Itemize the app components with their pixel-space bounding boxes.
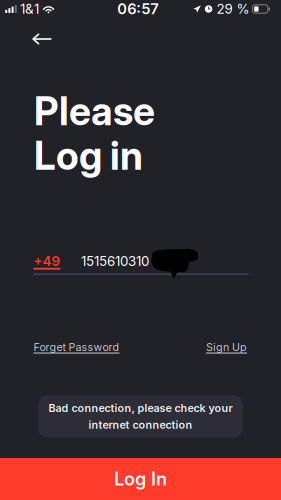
staticText: Forget Password [33,341,119,353]
staticText: Sign Up [206,341,247,353]
button[interactable]: Forget Password [33,341,119,353]
staticText: Log In [114,468,167,490]
staticText: 06:57 [117,0,158,18]
button[interactable]: Back [0,25,64,53]
staticText: 29 % [217,1,250,17]
staticText: Bad connection, please check your [48,402,232,415]
button[interactable]: Log In [0,458,281,500]
staticText: 1&1 [20,1,39,17]
staticText: 1515610310 [81,253,149,269]
staticText: internet connection [88,418,192,431]
staticText: Log in [34,132,143,179]
staticText: Please [34,88,155,135]
staticText: +49 [33,253,60,269]
button[interactable]: Sign Up [206,341,247,353]
